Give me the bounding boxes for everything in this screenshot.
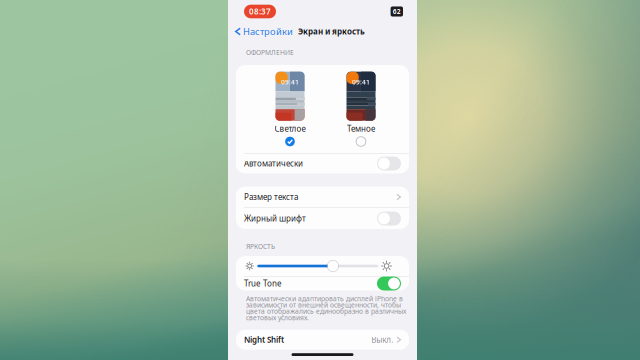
- button[interactable]: 09:41: [270, 72, 310, 146]
- staticText: Жирный шрифт: [244, 213, 306, 224]
- staticText: зависимости от внешней освещенности, что…: [246, 300, 401, 309]
- button[interactable]: True Tone: [236, 276, 409, 290]
- staticText: 09:41: [352, 78, 370, 86]
- staticText: световых условиях.: [246, 313, 309, 322]
- button[interactable]: Размер текста: [236, 186, 409, 207]
- staticText: Темное: [347, 123, 375, 134]
- button[interactable]: Жирный шрифт: [236, 208, 409, 229]
- staticText: True Tone: [244, 278, 282, 289]
- staticText: Автоматически: [244, 158, 303, 169]
- staticText: Выкл.: [371, 334, 393, 345]
- staticText: ОФОРМЛЕНИЕ: [246, 48, 294, 57]
- staticText: ЯРКОСТЬ: [246, 242, 275, 251]
- staticText: Автоматически адаптировать дисплей iPhon…: [246, 294, 403, 303]
- staticText: Настройки: [243, 25, 293, 38]
- staticText: Экран и яркость: [298, 26, 365, 37]
- button[interactable]: 09:41: [341, 72, 381, 146]
- staticText: Размер текста: [244, 192, 298, 202]
- button[interactable]: Автоматически: [236, 153, 409, 173]
- button[interactable]: Настройки: [235, 23, 293, 40]
- staticText: 62: [393, 7, 401, 16]
- staticText: цвета отображались единообразно в различ…: [246, 307, 406, 316]
- staticText: 08:37: [249, 6, 271, 17]
- staticText: 09:41: [281, 78, 299, 86]
- button[interactable]: Night Shift: [236, 330, 409, 350]
- staticText: Night Shift: [244, 334, 284, 345]
- staticText: Светлое: [274, 123, 305, 134]
